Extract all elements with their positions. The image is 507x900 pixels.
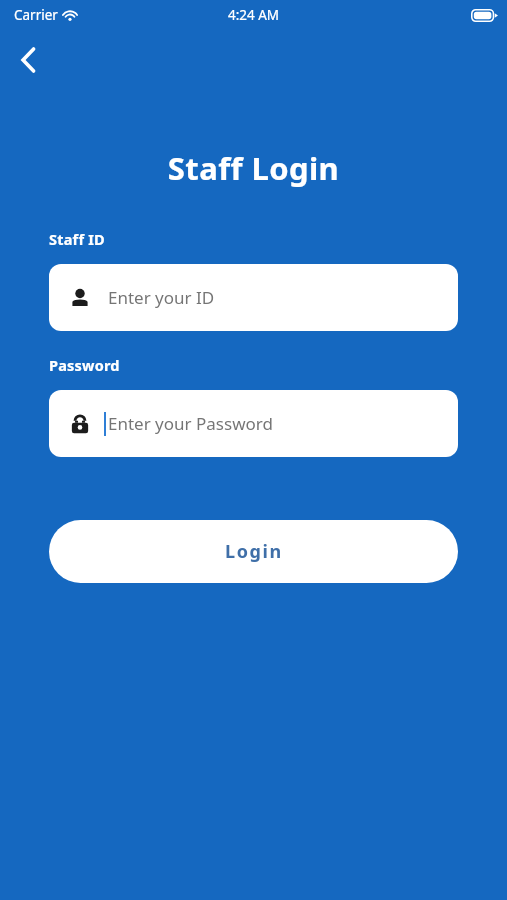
button[interactable]: Staff ID input xyxy=(49,264,458,331)
staticText: Carrier xyxy=(14,6,58,24)
button[interactable]: Password input xyxy=(49,390,458,457)
staticText: Password xyxy=(49,355,120,375)
staticText: Login xyxy=(225,539,283,564)
staticText: Staff Login xyxy=(0,147,507,189)
staticText: 4:24 AM xyxy=(0,6,507,24)
button[interactable]: Back xyxy=(8,40,48,80)
staticText: Enter your ID xyxy=(108,286,215,309)
staticText: Enter your Password xyxy=(108,412,273,435)
button[interactable]: Login xyxy=(49,520,458,583)
staticText: Staff ID xyxy=(49,229,105,249)
